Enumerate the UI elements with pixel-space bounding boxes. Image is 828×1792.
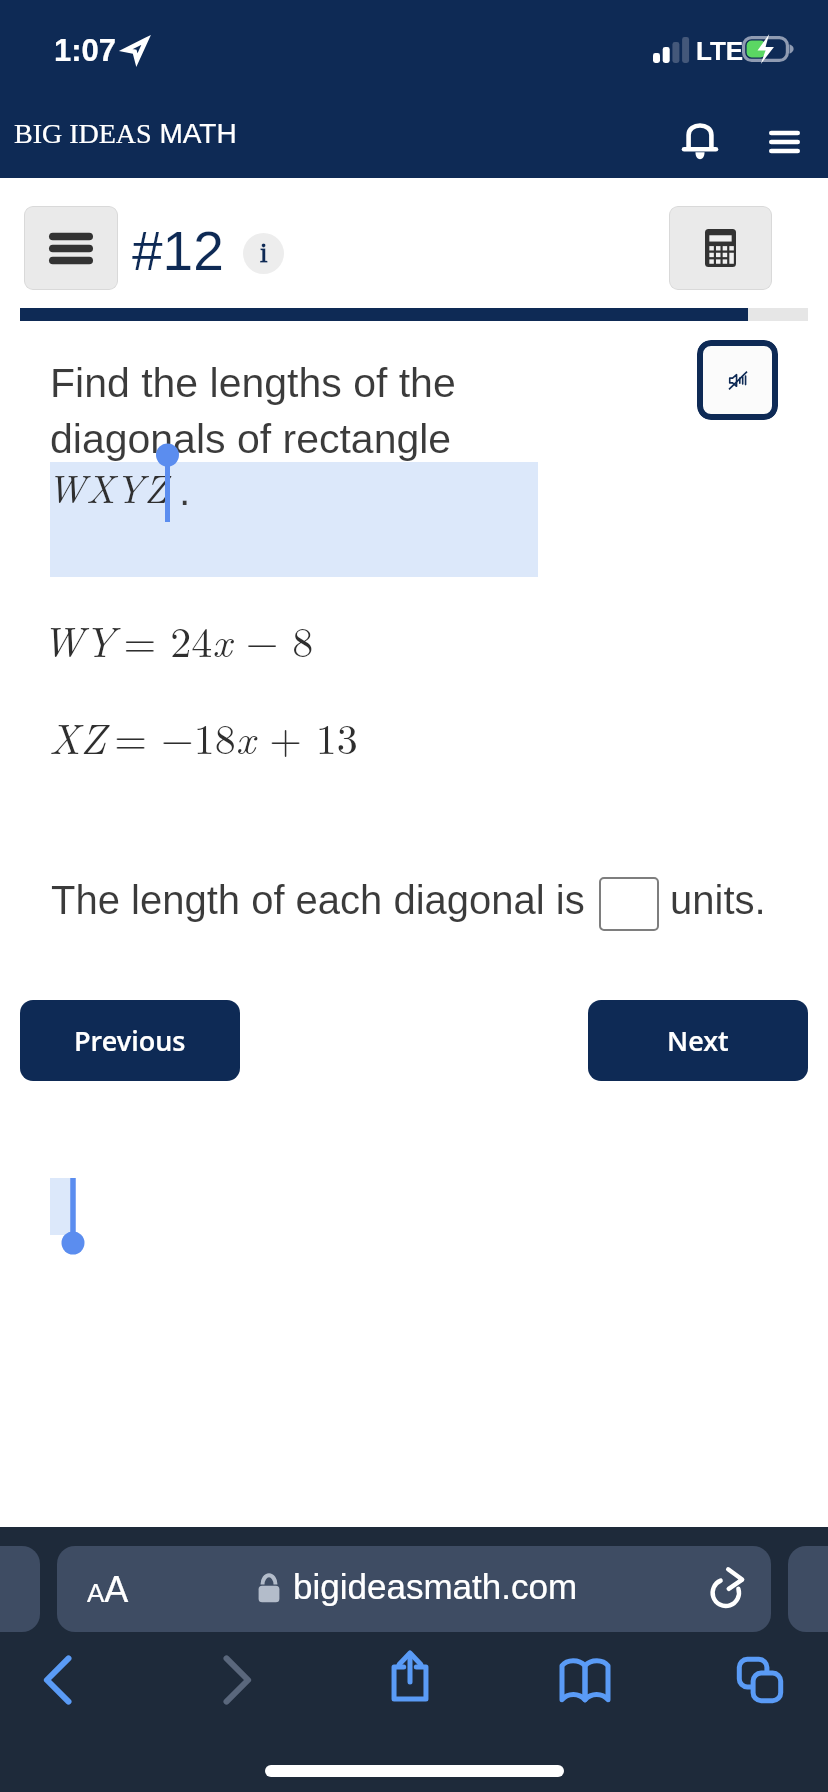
button[interactable]: Menu bbox=[746, 104, 822, 180]
staticText: diagonals of rectangle bbox=[50, 416, 452, 462]
button[interactable]: Share bbox=[378, 1644, 442, 1708]
staticText: 1:07 bbox=[54, 33, 117, 68]
button[interactable]: Reload bbox=[703, 1562, 755, 1614]
staticText: LTE bbox=[696, 36, 744, 65]
staticText: units. bbox=[670, 878, 766, 923]
button[interactable]: Tabs bbox=[728, 1648, 792, 1712]
button[interactable]: Answer input bbox=[599, 877, 659, 931]
staticText: bigideasmath.com bbox=[293, 1567, 578, 1606]
button[interactable]: Question navigator bbox=[24, 206, 118, 290]
button[interactable]: Page settings bbox=[57, 1546, 771, 1632]
button[interactable]: Back bbox=[26, 1648, 90, 1712]
staticText: AA bbox=[87, 1569, 129, 1609]
staticText: XZ = −18x + 13 bbox=[49, 707, 358, 767]
button[interactable]: Page settings bbox=[71, 1560, 145, 1618]
staticText: WY = 24x − 8 bbox=[42, 610, 314, 670]
staticText: Previous bbox=[74, 1022, 186, 1059]
staticText: The length of each diagonal is bbox=[51, 878, 585, 923]
staticText: #12 bbox=[132, 220, 224, 281]
button[interactable]: Calculator bbox=[669, 206, 772, 290]
staticText: i bbox=[260, 238, 268, 268]
button[interactable]: Forward bbox=[205, 1648, 269, 1712]
staticText: . bbox=[179, 468, 191, 514]
button[interactable]: Notifications bbox=[662, 102, 738, 178]
staticText: Find the lengths of the bbox=[50, 360, 456, 406]
button[interactable]: Next bbox=[588, 1000, 808, 1081]
button[interactable]: Info bbox=[243, 233, 284, 274]
staticText: WXYZ bbox=[47, 459, 168, 514]
staticText: BIG IDEAS MATH bbox=[14, 118, 237, 149]
button[interactable]: Previous bbox=[20, 1000, 240, 1081]
button[interactable]: Bookmarks bbox=[553, 1648, 617, 1712]
staticText: Next bbox=[667, 1022, 729, 1059]
button[interactable]: Mute audio bbox=[697, 340, 778, 420]
